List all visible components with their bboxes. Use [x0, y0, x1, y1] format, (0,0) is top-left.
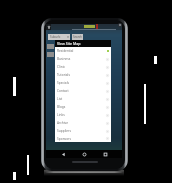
staticText: Contact: [57, 89, 69, 93]
staticText: Blogs: [57, 105, 66, 109]
button[interactable]: Home logo: [46, 24, 51, 30]
staticText: Residential: [57, 49, 74, 53]
button[interactable]: Recent apps: [101, 150, 109, 158]
button[interactable]: Sponsors: [55, 135, 111, 142]
staticText: Suburb: [50, 35, 61, 39]
button[interactable]: Clinic: [55, 63, 111, 71]
staticText: Tutorials: [57, 73, 70, 77]
button[interactable]: Tutorials: [55, 71, 111, 79]
button[interactable]: Business: [55, 55, 111, 63]
button[interactable]: Archive: [55, 119, 111, 127]
button[interactable]: Specials: [55, 79, 111, 87]
button[interactable]: List: [55, 95, 111, 103]
button[interactable]: Residential: [55, 47, 111, 55]
button[interactable]: Links: [55, 111, 111, 119]
button[interactable]: View Site Map: [55, 40, 111, 47]
staticText: Clinic: [57, 65, 65, 69]
staticText: Suppliers: [57, 129, 71, 133]
button[interactable]: Search: [72, 34, 83, 40]
button[interactable]: Blogs: [55, 103, 111, 111]
staticText: Links: [57, 113, 65, 117]
staticText: List: [57, 97, 63, 101]
staticText: Archive: [57, 121, 69, 125]
staticText: Search: [73, 35, 82, 39]
button[interactable]: Suburb: [48, 34, 70, 40]
staticText: Specials: [57, 81, 69, 85]
button[interactable]: Contact: [55, 87, 111, 95]
staticText: Sponsors: [57, 137, 71, 141]
staticText: Business: [57, 57, 71, 61]
button[interactable]: Back: [59, 150, 67, 158]
button[interactable]: Suppliers: [55, 127, 111, 135]
button[interactable]: Home: [80, 150, 88, 158]
staticText: View Site Map: [57, 41, 81, 46]
